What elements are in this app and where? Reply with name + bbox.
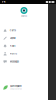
staticText: DRIVERX — [21, 15, 27, 17]
staticText: Messages — [10, 60, 19, 63]
staticText: Layout — [10, 37, 16, 39]
button[interactable]: Save the planet — [0, 82, 48, 93]
button[interactable]: Layout — [0, 34, 48, 42]
button[interactable]: Messages — [0, 58, 48, 65]
staticText: Audit — [10, 45, 16, 47]
staticText: Join green drive — [10, 88, 22, 90]
staticText: Profile — [10, 52, 17, 55]
button[interactable]: Profile — [0, 50, 48, 58]
staticText: Carts — [10, 29, 16, 32]
button[interactable]: Carts — [0, 26, 48, 34]
staticText: 9:41 — [2, 1, 6, 3]
staticText: Save the planet — [10, 85, 22, 87]
button[interactable]: Audit — [0, 42, 48, 50]
